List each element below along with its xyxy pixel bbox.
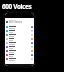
button[interactable] <box>6 45 33 49</box>
button[interactable] <box>6 53 33 57</box>
button[interactable] <box>6 49 33 53</box>
button[interactable] <box>6 37 33 41</box>
button[interactable] <box>6 29 33 33</box>
staticText: 600 Voices <box>2 2 32 11</box>
staticText: 600 Voices <box>9 20 22 24</box>
button[interactable] <box>6 41 33 45</box>
button[interactable] <box>6 33 33 37</box>
button[interactable] <box>6 25 33 29</box>
button[interactable] <box>6 57 33 61</box>
